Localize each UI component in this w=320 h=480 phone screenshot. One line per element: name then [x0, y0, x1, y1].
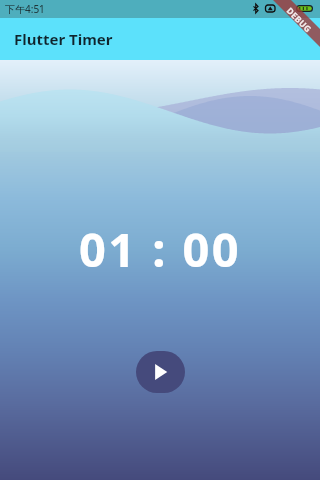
button[interactable]: Start timer — [136, 351, 185, 393]
other: Debug banner — [260, 0, 320, 60]
staticText: Flutter Timer — [14, 29, 113, 49]
staticText: 下午4:51 — [5, 2, 45, 16]
staticText: 01 : 00 — [79, 217, 241, 281]
staticText: DEBUG — [284, 5, 314, 35]
button[interactable]: Flutter Timer — [0, 18, 320, 60]
